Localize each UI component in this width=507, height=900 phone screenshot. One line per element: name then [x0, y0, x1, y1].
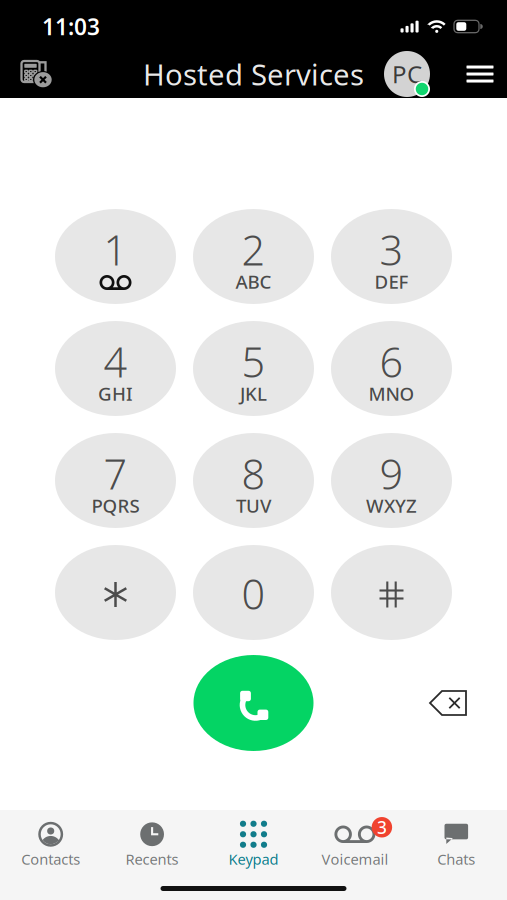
staticText: 7	[103, 446, 127, 501]
staticText: ABC	[235, 269, 271, 294]
staticText: GHI	[98, 381, 133, 406]
staticText: 4	[103, 334, 127, 389]
button[interactable]: Profile PC, online	[382, 50, 432, 98]
button[interactable]: 9	[331, 433, 452, 528]
staticText: 3	[377, 816, 387, 839]
button[interactable]: 6	[331, 321, 452, 416]
button[interactable]: 8	[193, 433, 314, 528]
button[interactable]: Contacts	[0, 814, 101, 876]
button[interactable]: 1	[55, 209, 176, 304]
staticText: 6	[379, 334, 403, 389]
staticText: Voicemail	[321, 849, 388, 869]
staticText: PC	[392, 58, 422, 90]
button[interactable]: Keypad	[203, 814, 304, 876]
staticText: MNO	[368, 381, 414, 406]
staticText: 11:03	[42, 11, 100, 41]
button[interactable]: Menu	[463, 50, 497, 98]
button[interactable]: 7	[55, 433, 176, 528]
button[interactable]: 4	[55, 321, 176, 416]
button[interactable]: 3	[304, 814, 406, 876]
staticText: TUV	[236, 493, 271, 518]
staticText: 9	[379, 446, 403, 501]
staticText: 0	[241, 566, 265, 621]
button[interactable]: Delete	[409, 668, 487, 738]
staticText: 1	[103, 222, 127, 277]
button[interactable]	[331, 545, 452, 640]
staticText: JKL	[240, 381, 267, 406]
button[interactable]: 5	[193, 321, 314, 416]
button[interactable]: Chats	[406, 814, 507, 876]
staticText: DEF	[374, 269, 408, 294]
button[interactable]: 3	[331, 209, 452, 304]
staticText: PQRS	[91, 493, 139, 518]
staticText: Recents	[126, 849, 179, 869]
button[interactable]: 0	[193, 545, 314, 640]
staticText: 5	[241, 334, 265, 389]
staticText: 8	[241, 446, 265, 501]
staticText: Contacts	[21, 849, 80, 869]
staticText: 3	[379, 222, 403, 277]
button[interactable]: Call	[193, 655, 313, 751]
button[interactable]	[55, 545, 176, 640]
button[interactable]: Recents	[101, 814, 203, 876]
staticText: WXYZ	[366, 493, 417, 518]
staticText: Keypad	[228, 849, 278, 869]
button[interactable]: 2	[193, 209, 314, 304]
staticText: 2	[241, 222, 265, 277]
staticText: Hosted Services	[143, 54, 364, 93]
button[interactable]: Hide dialpad	[15, 50, 59, 98]
staticText: Chats	[437, 849, 475, 869]
